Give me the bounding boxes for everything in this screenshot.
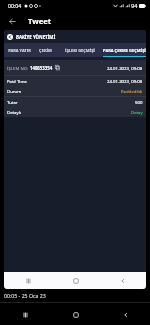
button[interactable]: Recents — [20, 309, 31, 320]
staticText: 94 — [131, 2, 138, 10]
button[interactable]: Recents — [23, 276, 33, 286]
button[interactable]: Back — [6, 15, 18, 27]
button[interactable]: Home — [70, 309, 81, 320]
staticText: Durum — [7, 88, 22, 94]
button[interactable]: PARA YATIR — [4, 43, 34, 57]
button[interactable]: Back — [118, 276, 128, 286]
staticText: 500 — [135, 99, 143, 105]
button[interactable]: PARA ÇEKME GEÇMİŞİ — [103, 43, 146, 57]
button[interactable]: İŞLEM GEÇMİŞİ — [57, 43, 103, 57]
staticText: Detay — [131, 109, 143, 115]
staticText: Tutar — [7, 99, 18, 105]
button[interactable]: Tutar — [7, 97, 143, 107]
button[interactable]: Back — [120, 309, 131, 320]
button[interactable]: Detaylı — [7, 107, 143, 117]
button[interactable]: ÇEKİM — [34, 43, 57, 57]
staticText: PARA YATIR — [8, 48, 31, 53]
staticText: İŞLEM GEÇMİŞİ — [65, 48, 95, 53]
staticText: İŞLEM NO: — [7, 65, 30, 71]
button[interactable]: Back — [7, 34, 13, 40]
staticText: 00:05 - 25 Oca 23 — [4, 292, 46, 299]
staticText: Reddedildi — [121, 88, 143, 94]
staticText: BAKİYE YÖNETİMİ — [16, 34, 56, 40]
staticText: Detaylı — [7, 109, 21, 115]
button[interactable]: Home — [71, 276, 81, 286]
staticText: 24.01.2023, 09:08 — [107, 65, 143, 71]
staticText: 00:04 — [8, 2, 22, 9]
button[interactable]: Durum — [7, 86, 143, 96]
staticText: 148653354 — [30, 65, 53, 71]
staticText: PARA ÇEKME GEÇMİŞİ — [103, 48, 146, 53]
staticText: Tweet — [28, 16, 52, 26]
staticText: 24.01.2023, 09:08 — [107, 78, 143, 84]
staticText: ÇEKİM — [39, 48, 52, 53]
button[interactable]: Paid Time — [7, 76, 143, 86]
staticText: Paid Time — [7, 78, 27, 84]
